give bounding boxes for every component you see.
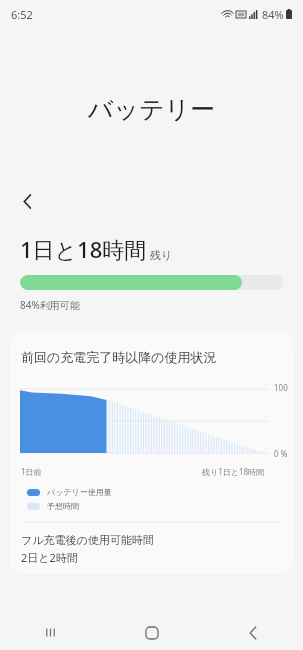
staticText: 6:52	[11, 7, 33, 22]
staticText: 残り	[150, 248, 173, 262]
staticText: 100	[274, 382, 288, 393]
staticText: 84%	[262, 7, 284, 22]
button[interactable]: Back	[11, 185, 43, 217]
staticText: 予想時間	[47, 501, 79, 511]
staticText: 0 %	[274, 448, 288, 459]
button[interactable]: Back	[202, 615, 303, 650]
staticText: 84%利用可能	[20, 298, 80, 312]
staticText: 1日と18時間	[20, 234, 147, 264]
staticText: フル充電後の使用可能時間	[21, 533, 154, 547]
button[interactable]: Recent apps	[0, 615, 101, 650]
staticText: バッテリー使用量	[47, 487, 112, 497]
button[interactable]: バッテリー使用量	[27, 487, 112, 497]
staticText: 1日前	[21, 466, 42, 477]
staticText: 前回の充電完了時以降の使用状況	[21, 349, 217, 365]
staticText: 2日と2時間	[21, 550, 78, 565]
button[interactable]: 予想時間	[27, 501, 79, 511]
button[interactable]: Home	[101, 615, 202, 650]
staticText: 残り1日と18時間	[202, 466, 265, 477]
staticText: バッテリー	[0, 94, 303, 125]
button[interactable]: 前回の充電完了時以降の使用状況	[10, 332, 293, 574]
